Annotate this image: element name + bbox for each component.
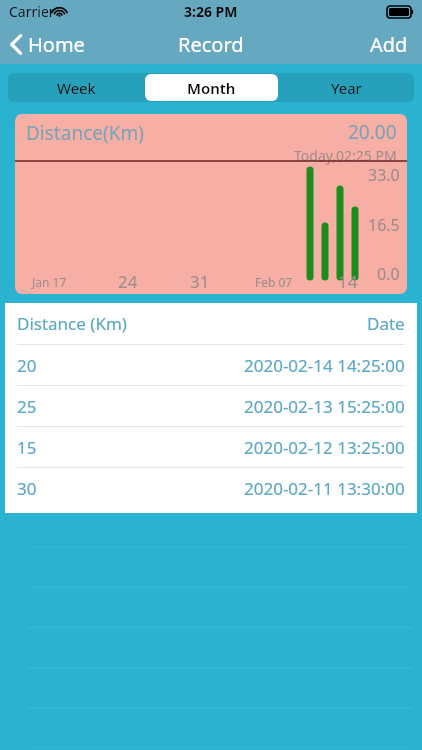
- button[interactable]: Year: [280, 74, 413, 101]
- staticText: Month: [187, 78, 236, 98]
- button[interactable]: Distance (Km): [5, 303, 417, 344]
- staticText: 16.5: [368, 214, 400, 236]
- staticText: Home: [28, 31, 85, 58]
- button[interactable]: 20: [5, 345, 417, 385]
- staticText: 31: [190, 270, 210, 293]
- button[interactable]: 15: [5, 427, 417, 467]
- staticText: Distance (Km): [17, 312, 127, 335]
- staticText: 15: [17, 436, 37, 459]
- button[interactable]: Month: [145, 74, 278, 101]
- button[interactable]: Distance(Km): [15, 114, 407, 294]
- button[interactable]: 25: [5, 386, 417, 426]
- staticText: 25: [17, 395, 37, 418]
- button[interactable]: Week: [9, 74, 143, 101]
- staticText: 24: [118, 270, 138, 293]
- staticText: Date: [367, 312, 405, 335]
- staticText: 30: [17, 477, 37, 500]
- staticText: 3:26 PM: [184, 2, 238, 21]
- staticText: Feb 07: [255, 274, 293, 290]
- staticText: 2020-02-11 13:30:00: [244, 477, 405, 500]
- staticText: 0.0: [377, 263, 400, 285]
- staticText: Add: [370, 31, 408, 58]
- button[interactable]: 30: [5, 468, 417, 508]
- button[interactable]: Add: [356, 25, 422, 64]
- staticText: 20: [17, 354, 37, 377]
- staticText: Jan 17: [32, 274, 67, 290]
- staticText: 2020-02-12 13:25:00: [244, 436, 405, 459]
- staticText: Record: [178, 31, 244, 58]
- staticText: 2020-02-14 14:25:00: [244, 354, 405, 377]
- staticText: 20.00: [348, 119, 397, 145]
- staticText: 14: [338, 270, 358, 293]
- staticText: 2020-02-13 15:25:00: [244, 395, 405, 418]
- staticText: Today,02:25 PM: [294, 146, 397, 165]
- staticText: Year: [331, 78, 362, 98]
- staticText: Distance(Km): [26, 120, 144, 146]
- staticText: Week: [57, 78, 96, 98]
- button[interactable]: Home: [0, 27, 95, 62]
- staticText: Carrier: [9, 2, 55, 21]
- staticText: 33.0: [368, 164, 400, 186]
